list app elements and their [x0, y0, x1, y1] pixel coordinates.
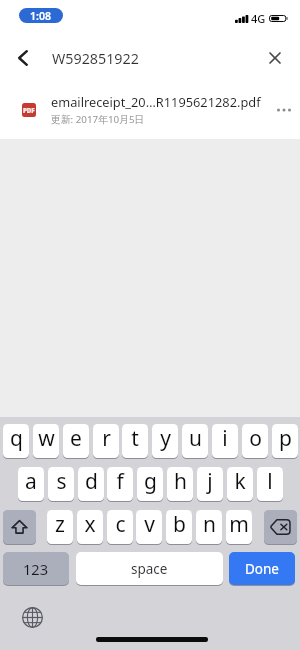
staticText: i: [222, 424, 228, 453]
staticText: x: [84, 510, 96, 539]
button[interactable]: c: [107, 510, 133, 544]
button[interactable]: q: [3, 424, 29, 458]
staticText: emailreceipt_20…R1195621282.pdf: [51, 93, 266, 110]
button[interactable]: Close: [254, 35, 296, 81]
button[interactable]: w: [33, 424, 59, 458]
button[interactable]: d: [78, 467, 104, 501]
staticText: q: [10, 424, 23, 453]
staticText: c: [115, 510, 126, 539]
button[interactable]: PDF: [0, 85, 300, 139]
staticText: Done: [245, 560, 279, 578]
button[interactable]: b: [166, 510, 192, 544]
button[interactable]: z: [47, 510, 73, 544]
staticText: l: [267, 467, 273, 496]
button[interactable]: space: [76, 552, 223, 585]
button[interactable]: n: [196, 510, 222, 544]
staticText: z: [55, 510, 65, 539]
button[interactable]: p: [272, 424, 298, 458]
staticText: b: [173, 510, 186, 539]
button[interactable]: i: [212, 424, 238, 458]
staticText: s: [56, 467, 67, 496]
staticText: v: [144, 510, 155, 539]
staticText: 1:08: [30, 9, 52, 23]
button[interactable]: e: [63, 424, 89, 458]
staticText: k: [234, 467, 246, 496]
button[interactable]: 123: [3, 552, 69, 585]
staticText: W592851922: [52, 49, 139, 68]
staticText: r: [102, 424, 111, 453]
staticText: f: [116, 467, 124, 496]
button[interactable]: t: [122, 424, 148, 458]
button[interactable]: l: [257, 467, 283, 501]
staticText: n: [203, 510, 216, 539]
staticText: PDF: [23, 106, 35, 114]
button[interactable]: Recording 1:08: [19, 8, 63, 23]
button[interactable]: r: [93, 424, 119, 458]
button[interactable]: g: [137, 467, 163, 501]
staticText: t: [131, 424, 139, 453]
button[interactable]: h: [167, 467, 193, 501]
button[interactable]: m: [226, 510, 252, 544]
staticText: space: [131, 560, 168, 578]
button[interactable]: s: [48, 467, 74, 501]
button[interactable]: u: [182, 424, 208, 458]
button[interactable]: More options: [270, 96, 298, 124]
staticText: e: [70, 424, 82, 453]
button[interactable]: j: [197, 467, 223, 501]
staticText: w: [38, 424, 55, 453]
button[interactable]: Done: [229, 552, 295, 585]
button[interactable]: y: [152, 424, 178, 458]
staticText: u: [189, 424, 202, 453]
staticText: p: [279, 424, 292, 453]
staticText: m: [229, 510, 249, 539]
button[interactable]: Shift: [3, 510, 36, 544]
staticText: a: [25, 467, 37, 496]
staticText: g: [144, 467, 157, 496]
staticText: 更新: 2017年10月5日: [51, 113, 145, 126]
button[interactable]: x: [77, 510, 103, 544]
staticText: o: [249, 424, 262, 453]
button[interactable]: Backspace: [264, 510, 297, 544]
button[interactable]: a: [18, 467, 44, 501]
button[interactable]: Back: [0, 35, 46, 81]
button[interactable]: k: [227, 467, 253, 501]
staticText: h: [174, 467, 187, 496]
staticText: 4G: [251, 11, 266, 26]
staticText: 123: [23, 559, 49, 579]
staticText: y: [160, 424, 171, 453]
button[interactable]: o: [242, 424, 268, 458]
button[interactable]: v: [136, 510, 162, 544]
staticText: j: [207, 467, 213, 496]
button[interactable]: Change keyboard: [21, 606, 43, 628]
button[interactable]: f: [107, 467, 133, 501]
staticText: d: [85, 467, 98, 496]
